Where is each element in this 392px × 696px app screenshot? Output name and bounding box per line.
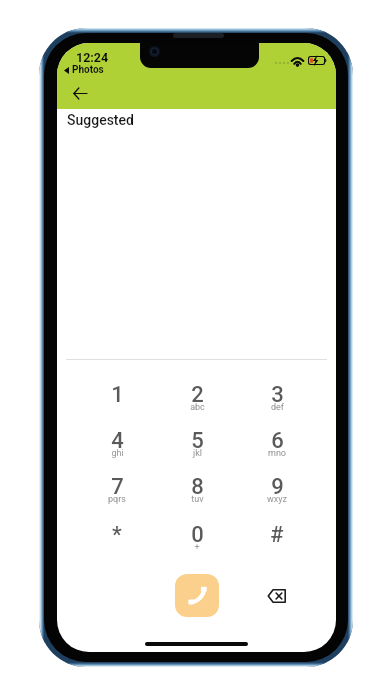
button[interactable]: 2	[157, 382, 237, 428]
staticText: 9	[271, 474, 284, 500]
button[interactable]: 8	[157, 474, 237, 520]
button[interactable]: Call	[175, 574, 219, 617]
staticText: 5	[191, 428, 204, 454]
button[interactable]: *	[77, 522, 157, 568]
staticText: def	[271, 402, 284, 413]
button[interactable]: Backspace	[257, 581, 295, 611]
staticText: mno	[268, 448, 286, 459]
staticText: 8	[191, 474, 204, 500]
staticText: 1	[111, 382, 124, 408]
button[interactable]: 3	[237, 382, 317, 428]
button[interactable]: Back	[68, 81, 92, 105]
staticText: #	[270, 522, 284, 548]
staticText: *	[112, 522, 122, 548]
staticText: 3	[271, 382, 284, 408]
button[interactable]: 7	[77, 474, 157, 520]
staticText: 4	[111, 428, 124, 454]
staticText: 7	[111, 474, 124, 500]
button[interactable]: 6	[237, 428, 317, 474]
button[interactable]: 4	[77, 428, 157, 474]
staticText: jkl	[193, 448, 202, 459]
staticText: Photos	[72, 64, 104, 76]
staticText: abc	[190, 402, 205, 413]
staticText: wxyz	[267, 494, 287, 505]
staticText: ghi	[111, 448, 124, 459]
staticText: 0	[191, 522, 204, 548]
staticText: 12:24	[76, 50, 109, 65]
staticText: Suggested	[67, 112, 134, 128]
staticText: 6	[271, 428, 284, 454]
button[interactable]: #	[237, 522, 317, 568]
staticText: pqrs	[108, 494, 126, 505]
button[interactable]: 0	[157, 522, 237, 568]
staticText: 2	[191, 382, 204, 408]
staticText: +	[194, 542, 200, 553]
button[interactable]: 9	[237, 474, 317, 520]
staticText: tuv	[191, 494, 204, 505]
button[interactable]: 1	[77, 382, 157, 428]
button[interactable]: 5	[157, 428, 237, 474]
